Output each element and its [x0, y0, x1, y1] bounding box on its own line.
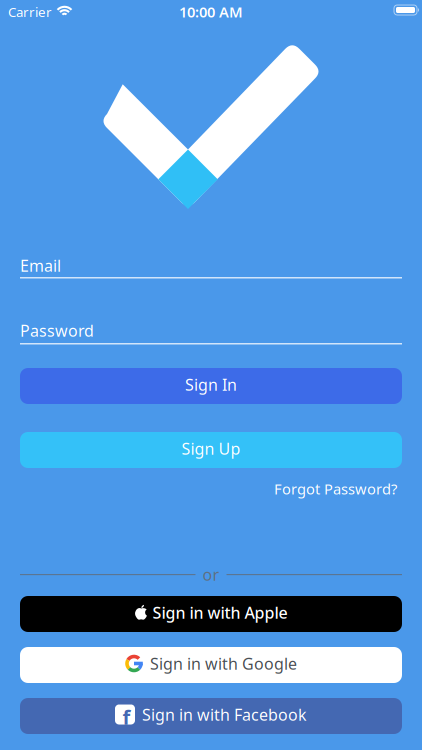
button[interactable]: Sign In: [20, 368, 402, 404]
staticText: Sign Up: [181, 438, 240, 459]
staticText: Password: [20, 320, 94, 341]
button[interactable]: Sign in with Apple: [20, 596, 402, 632]
button[interactable]: Forgot Password?: [274, 479, 397, 498]
button[interactable]: Sign Up: [20, 432, 402, 468]
staticText: Forgot Password?: [274, 479, 397, 498]
staticText: Carrier: [8, 3, 52, 21]
staticText: Sign in with Apple: [152, 602, 287, 623]
button[interactable]: f: [20, 698, 402, 734]
staticText: 10:00 AM: [179, 2, 243, 21]
textField[interactable]: Email: [20, 252, 402, 282]
staticText: Sign In: [185, 374, 237, 395]
staticText: or: [202, 564, 219, 585]
button[interactable]: Sign in with Google: [20, 647, 402, 683]
staticText: Email: [20, 255, 61, 276]
staticText: Sign in with Facebook: [142, 704, 307, 725]
staticText: Sign in with Google: [150, 653, 297, 674]
secureTextField[interactable]: Password: [20, 317, 402, 347]
staticText: Email: [20, 252, 79, 282]
staticText: Password: [20, 317, 124, 347]
staticText: f: [122, 704, 130, 730]
